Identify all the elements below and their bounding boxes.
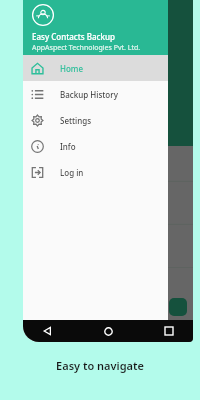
button[interactable]: Log in [23, 159, 168, 185]
staticText: Home [60, 63, 84, 74]
button[interactable]: Settings [23, 107, 168, 133]
staticText: Backup History [60, 89, 118, 100]
button[interactable]: Add backup [169, 298, 187, 316]
staticText: Easy to navigate [56, 358, 144, 373]
staticText: Settings [60, 115, 92, 126]
button[interactable]: Backup History [23, 81, 168, 107]
button[interactable]: Home [23, 55, 168, 81]
staticText: Info [60, 141, 76, 152]
staticText: Log in [60, 167, 84, 178]
staticText: Easy Contacts Backup [32, 31, 115, 42]
button[interactable]: Home [100, 323, 116, 339]
staticText: AppAspect Technologies Pvt. Ltd. [32, 43, 141, 53]
button[interactable]: Recent apps [161, 323, 177, 339]
button[interactable]: Info [23, 133, 168, 159]
button[interactable]: Back [39, 323, 55, 339]
